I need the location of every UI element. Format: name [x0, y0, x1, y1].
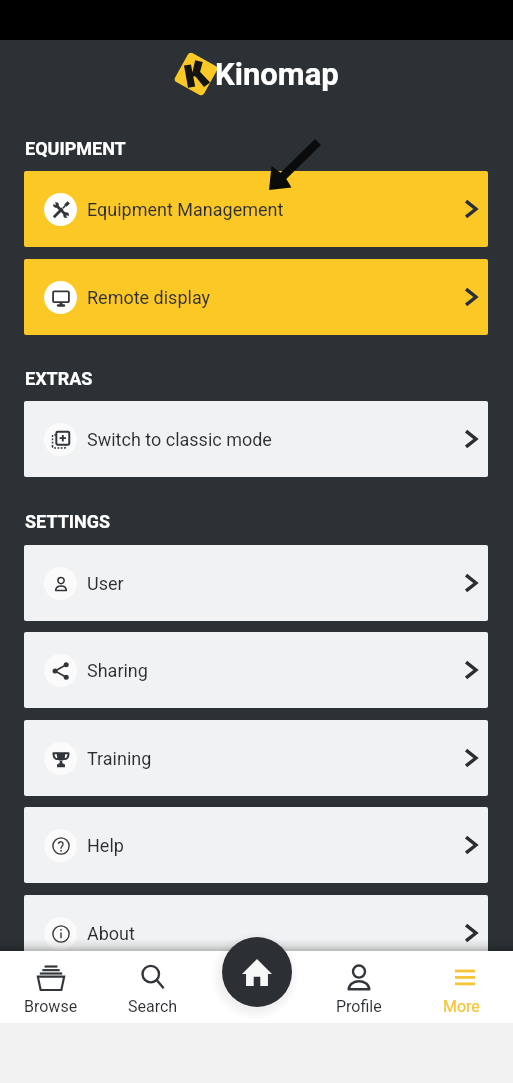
- staticText: More: [443, 997, 480, 1016]
- other: Profile: [345, 964, 373, 992]
- other: Sharing: [52, 662, 70, 680]
- button[interactable]: Home: [222, 937, 292, 1007]
- staticText: Profile: [336, 997, 382, 1016]
- staticText: Sharing: [87, 660, 148, 681]
- button[interactable]: Switch to classic mode: [24, 401, 488, 477]
- button[interactable]: Training: [24, 720, 488, 796]
- other: About: [52, 925, 70, 943]
- staticText: Remote display: [87, 287, 211, 308]
- staticText: Switch to classic mode: [87, 429, 272, 450]
- staticText: About: [87, 923, 135, 944]
- staticText: Search: [128, 997, 178, 1016]
- button[interactable]: Help: [24, 807, 488, 883]
- button[interactable]: Search: [102, 954, 204, 1026]
- button[interactable]: Profile: [307, 954, 410, 1026]
- staticText: Browse: [24, 997, 78, 1016]
- button[interactable]: More: [410, 954, 513, 1026]
- other: User: [52, 575, 70, 593]
- button[interactable]: About: [24, 895, 488, 971]
- other: Search: [139, 964, 167, 992]
- staticText: Equipment Management: [87, 199, 284, 220]
- other: Equipment: [52, 201, 70, 219]
- button[interactable]: Browse: [0, 954, 102, 1026]
- other: Remote display: [52, 289, 70, 307]
- other: Switch to classic mode: [52, 431, 70, 449]
- button[interactable]: Sharing: [24, 632, 488, 708]
- button[interactable]: Remote display: [24, 259, 488, 335]
- staticText: EXTRAS: [25, 368, 93, 389]
- other: Browse: [37, 964, 65, 992]
- other: More: [448, 964, 476, 992]
- other: Help: [52, 837, 70, 855]
- staticText: Training: [87, 748, 152, 769]
- staticText: Kinomap: [215, 56, 339, 92]
- button[interactable]: Equipment: [24, 171, 488, 247]
- button[interactable]: User: [24, 545, 488, 621]
- staticText: EQUIPMENT: [25, 138, 126, 159]
- staticText: SETTINGS: [25, 511, 111, 532]
- staticText: Help: [87, 835, 124, 856]
- staticText: User: [87, 573, 124, 594]
- other: Training: [52, 750, 70, 768]
